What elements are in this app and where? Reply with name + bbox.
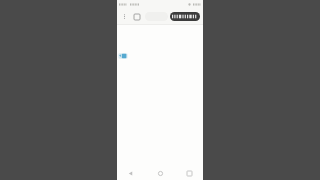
button[interactable]: Image placeholder xyxy=(118,52,128,60)
button[interactable]: Recent apps xyxy=(184,168,195,179)
button[interactable]: Home xyxy=(155,168,166,179)
button[interactable]: Tabs xyxy=(132,12,142,22)
button[interactable]: Back xyxy=(125,168,136,179)
button[interactable] xyxy=(170,12,200,21)
button[interactable]: More options xyxy=(120,12,129,21)
